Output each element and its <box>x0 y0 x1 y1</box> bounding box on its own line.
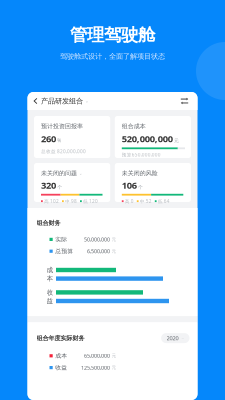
staticText: 320 <box>41 179 56 191</box>
staticText: 元 <box>174 138 179 144</box>
staticText: ⌄ <box>85 98 89 104</box>
staticText: ⌄ <box>181 336 184 340</box>
staticText: 元 <box>111 365 116 370</box>
staticText: % <box>57 137 61 144</box>
staticText: 低 64 <box>158 198 170 204</box>
staticText: 管理驾驶舱 <box>70 24 155 46</box>
staticText: 预计投资回报率 <box>41 122 83 130</box>
staticText: 成本 <box>46 266 53 283</box>
button[interactable]: 产品研发组合 <box>27 92 93 110</box>
staticText: 总收益 820,000,000 <box>41 148 86 155</box>
staticText: 未关闭的风险 <box>122 169 158 177</box>
staticText: 总预算 <box>55 247 73 255</box>
staticText: 组合年度实际财务 <box>36 334 84 342</box>
staticText: 元 <box>111 237 116 242</box>
staticText: 成本 <box>55 352 67 359</box>
staticText: 预算650,000,000 <box>122 152 161 158</box>
staticText: 260 <box>41 132 56 145</box>
staticText: 2020 <box>167 334 179 342</box>
staticText: 组合成本 <box>122 122 146 130</box>
staticText: 中 52 <box>140 198 152 204</box>
staticText: 元 <box>111 353 116 359</box>
staticText: 125,500,000 <box>81 364 110 371</box>
button[interactable]: 选择年份 2020 <box>161 333 189 343</box>
staticText: 50,000,000 <box>84 236 110 243</box>
staticText: 低 120 <box>83 198 98 204</box>
staticText: 高 0 <box>125 198 134 204</box>
staticText: 元 <box>111 248 116 254</box>
staticText: 收益 <box>46 288 53 305</box>
staticText: 组合财务 <box>36 219 60 227</box>
staticText: 个 <box>57 184 62 190</box>
staticText: ⌄ <box>79 171 82 176</box>
staticText: 6,500,000 <box>87 248 110 255</box>
staticText: 未关闭的问题 <box>41 169 77 177</box>
staticText: 106 <box>122 179 137 191</box>
staticText: 520,000,000 <box>122 132 173 145</box>
staticText: 收益 <box>55 364 67 371</box>
staticText: 高 102 <box>44 198 59 204</box>
staticText: 产品研发组合 <box>41 96 83 106</box>
staticText: 中 98 <box>65 198 77 204</box>
button[interactable]: 切换视图 <box>176 92 197 110</box>
staticText: 65,000,000 <box>84 352 110 359</box>
staticText: 个 <box>138 184 143 190</box>
staticText: 驾驶舱式设计，全面了解项目状态 <box>60 52 165 61</box>
staticText: 实际 <box>55 236 67 243</box>
